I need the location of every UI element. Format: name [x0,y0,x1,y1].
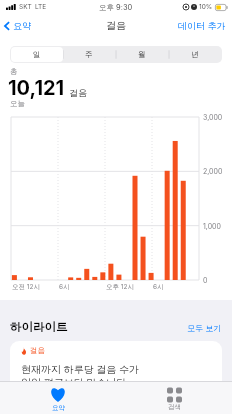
staticText: 0 [203,276,208,284]
button[interactable]: 걸음 [10,341,222,399]
staticText: 걸음 [69,87,87,98]
staticText: 6시 [153,283,164,291]
staticText: 3,000 [203,113,223,121]
button[interactable]: 데이터 추가 [174,19,232,33]
staticText: SKT [19,3,32,11]
staticText: 오늘 [10,99,25,108]
staticText: 걸음 [30,346,45,355]
staticText: 월 [138,50,146,59]
staticText: 현재까지 하루당 걸음 수가 일일 평균보다 많습니다. [21,363,139,389]
staticText: 검색 [168,403,181,411]
button[interactable]: 일 [11,47,63,62]
staticText: 6시 [59,283,70,291]
staticText: 10% [199,3,213,11]
staticText: 년 [191,50,199,59]
button[interactable]: 요약 [0,382,116,414]
staticText: 1,000 [203,222,221,230]
staticText: 2,000 [203,167,223,175]
staticText: 주 [85,50,93,59]
button[interactable]: 검색 [116,382,232,414]
button[interactable]: 년 [168,47,221,62]
button[interactable]: 월 [115,47,168,62]
staticText: 요약 [13,20,31,31]
staticText: 요약 [52,404,65,412]
button[interactable]: 주 [63,47,115,62]
staticText: 일 [33,50,41,59]
staticText: 오후 9:30 [99,3,133,12]
button[interactable]: 요약 [0,19,37,33]
staticText: 10,121 [8,76,65,100]
staticText: 하이라이트 [10,320,68,334]
staticText: 오전 12시 [12,283,40,291]
button[interactable]: 모두 보기 [187,321,222,331]
staticText: 걸음 [106,19,126,32]
staticText: 오후 12시 [106,283,134,291]
staticText: LTE [35,3,47,11]
staticText: 총 [10,67,18,76]
